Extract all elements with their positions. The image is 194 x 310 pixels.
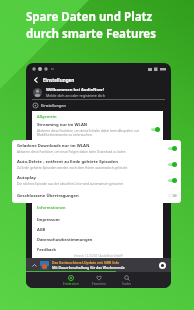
staticText: Informationen bbox=[37, 205, 66, 210]
staticText: Einstellungen bbox=[41, 103, 66, 108]
staticText: Datenschutzbestimmungen bbox=[37, 237, 93, 242]
staticText: Version 1.2.3 (2021 AudioNow GmbH) bbox=[37, 254, 160, 258]
button[interactable]: Autoplay bbox=[12, 172, 181, 188]
staticText: Zu Ende gehörte Episoden werden nach dem… bbox=[17, 166, 128, 170]
button[interactable]: Geschlossene Übertragungen bbox=[12, 188, 181, 203]
button[interactable]: Geladene Downloads nur im WLAN bbox=[12, 140, 181, 156]
button[interactable]: Einstellung aktiviert bbox=[168, 178, 177, 183]
button[interactable]: Das Geräuschinsel-Update mit NDR Info bbox=[26, 258, 171, 272]
staticText: Impressum bbox=[37, 217, 60, 222]
button[interactable]: Datenschutzbestimmungen bbox=[37, 234, 160, 244]
button[interactable]: AGB bbox=[37, 224, 160, 234]
staticText: AGB bbox=[37, 227, 46, 232]
staticText: Mit Dauerbeschallung für das Wochenende bbox=[52, 265, 125, 270]
button[interactable]: Entdecken bbox=[57, 272, 85, 288]
staticText: Favoriten bbox=[92, 282, 107, 286]
staticText: Autoplay bbox=[17, 175, 36, 181]
staticText: Einstellungen bbox=[43, 77, 75, 83]
button[interactable]: Abspielen bbox=[159, 262, 166, 269]
staticText: Geschlossene Übertragungen bbox=[17, 193, 79, 199]
button[interactable]: Zurück bbox=[32, 76, 40, 84]
button[interactable]: Willkommen bei AudioNow! bbox=[33, 85, 165, 99]
staticText: Geladene Downloads nur im WLAN bbox=[17, 143, 90, 149]
staticText: Aktiviere diese Funktion, um neue Folgen… bbox=[17, 150, 126, 154]
button[interactable]: Einstellungen bbox=[33, 100, 171, 111]
staticText: Spare Daten und Platz bbox=[26, 9, 153, 25]
button[interactable]: Einstellung aktiviert bbox=[168, 162, 177, 167]
staticText: Auto-Delete - entfernt zu Ende gehörte E… bbox=[17, 159, 118, 165]
button[interactable]: Einstellung aktiviert bbox=[168, 146, 177, 151]
staticText: Feedback bbox=[37, 247, 56, 252]
staticText: Willkommen bei AudioNow! bbox=[46, 87, 104, 93]
button[interactable]: Favoriten bbox=[85, 272, 113, 288]
staticText: Die nächste Episode aus der aktuellen Li… bbox=[17, 182, 123, 186]
staticText: Entdecken bbox=[63, 282, 79, 286]
staticText: durch smarte Features bbox=[26, 26, 156, 42]
button[interactable]: Feedback bbox=[37, 244, 160, 254]
button[interactable]: Suche bbox=[113, 272, 141, 288]
button[interactable]: Streaming nur im WLAN bbox=[37, 122, 160, 137]
button[interactable]: Einstellung deaktiviert bbox=[168, 193, 177, 198]
staticText: Suche bbox=[122, 282, 132, 286]
staticText: Das Geräuschinsel-Update mit NDR Info bbox=[52, 260, 120, 265]
button[interactable]: Impressum bbox=[37, 214, 160, 224]
staticText: Streaming nur im WLAN bbox=[37, 122, 88, 128]
staticText: Melde dich an oder registriere dich bbox=[46, 93, 105, 98]
button[interactable]: Auto-Delete - entfernt zu Ende gehörte E… bbox=[12, 156, 181, 172]
staticText: Aktiviere diese Funktion, um deine Inhal… bbox=[37, 129, 148, 137]
button[interactable]: Einstellung aktiviert bbox=[151, 127, 160, 132]
staticText: Allgemein bbox=[37, 114, 57, 119]
